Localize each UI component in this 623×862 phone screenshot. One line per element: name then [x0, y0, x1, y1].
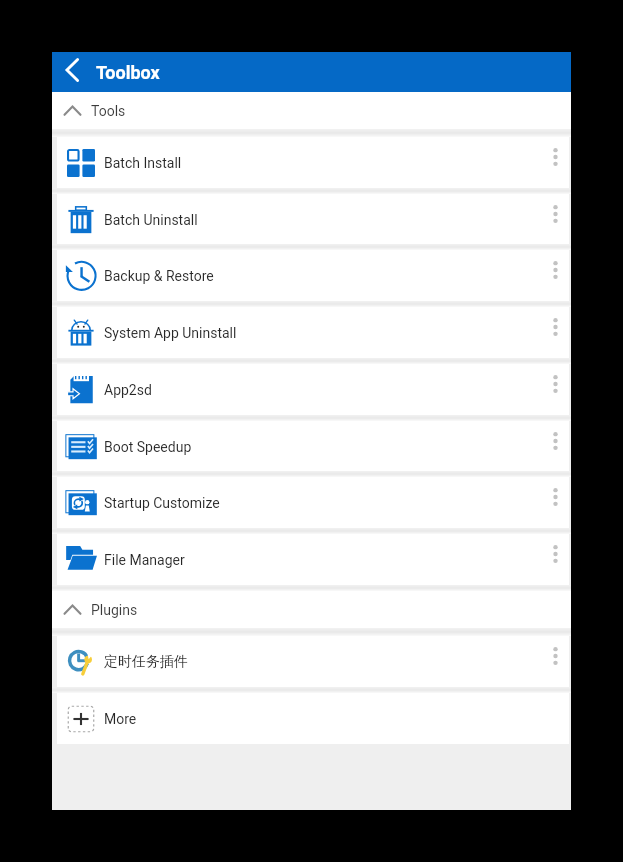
staticText: More: [104, 711, 137, 727]
button[interactable]: Tools: [52, 92, 571, 130]
button[interactable]: More options: [535, 364, 569, 415]
button[interactable]: Boot Speedup: [57, 421, 569, 472]
staticText: Plugins: [91, 602, 138, 618]
staticText: File Manager: [104, 552, 185, 568]
button[interactable]: More options: [535, 421, 569, 472]
staticText: Batch Install: [104, 155, 182, 171]
button[interactable]: System App Uninstall: [57, 307, 569, 358]
staticText: 定时任务插件: [104, 653, 188, 671]
button[interactable]: Backup & Restore: [57, 250, 569, 301]
button[interactable]: More options: [535, 307, 569, 358]
staticText: Startup Customize: [104, 495, 220, 511]
staticText: Backup & Restore: [104, 268, 214, 284]
button[interactable]: Batch Install: [57, 137, 569, 188]
button[interactable]: Batch Uninstall: [57, 194, 569, 245]
staticText: System App Uninstall: [104, 325, 237, 341]
staticText: Toolbox: [96, 62, 160, 83]
staticText: Boot Speedup: [104, 439, 192, 455]
staticText: App2sd: [104, 382, 152, 398]
button[interactable]: 定时任务插件: [57, 636, 569, 687]
button[interactable]: More options: [535, 636, 569, 687]
staticText: Tools: [91, 103, 126, 119]
staticText: Batch Uninstall: [104, 212, 198, 228]
button[interactable]: More options: [535, 250, 569, 301]
button[interactable]: More: [57, 693, 569, 744]
button[interactable]: More options: [535, 477, 569, 528]
button[interactable]: More options: [535, 194, 569, 245]
button[interactable]: Back: [56, 50, 88, 90]
button[interactable]: File Manager: [57, 534, 569, 585]
button[interactable]: More options: [535, 137, 569, 188]
button[interactable]: App2sd: [57, 364, 569, 415]
button[interactable]: More options: [535, 534, 569, 585]
button[interactable]: Startup Customize: [57, 477, 569, 528]
button[interactable]: Plugins: [52, 591, 571, 629]
